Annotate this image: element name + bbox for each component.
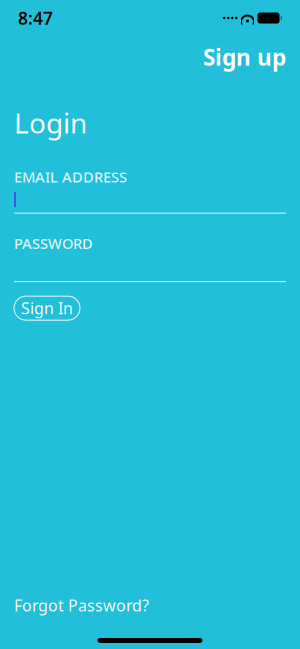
staticText: Forgot Password? (14, 595, 149, 616)
button[interactable]: Sign In (14, 296, 80, 320)
staticText: EMAIL ADDRESS (14, 167, 127, 187)
staticText: 8:47 (18, 6, 53, 29)
staticText: Sign up (203, 42, 286, 72)
staticText: Login (14, 104, 87, 141)
button[interactable]: Sign up (189, 36, 300, 78)
staticText: PASSWORD (14, 234, 93, 253)
button[interactable]: Forgot Password? (0, 589, 163, 622)
staticText: Sign In (21, 297, 73, 319)
